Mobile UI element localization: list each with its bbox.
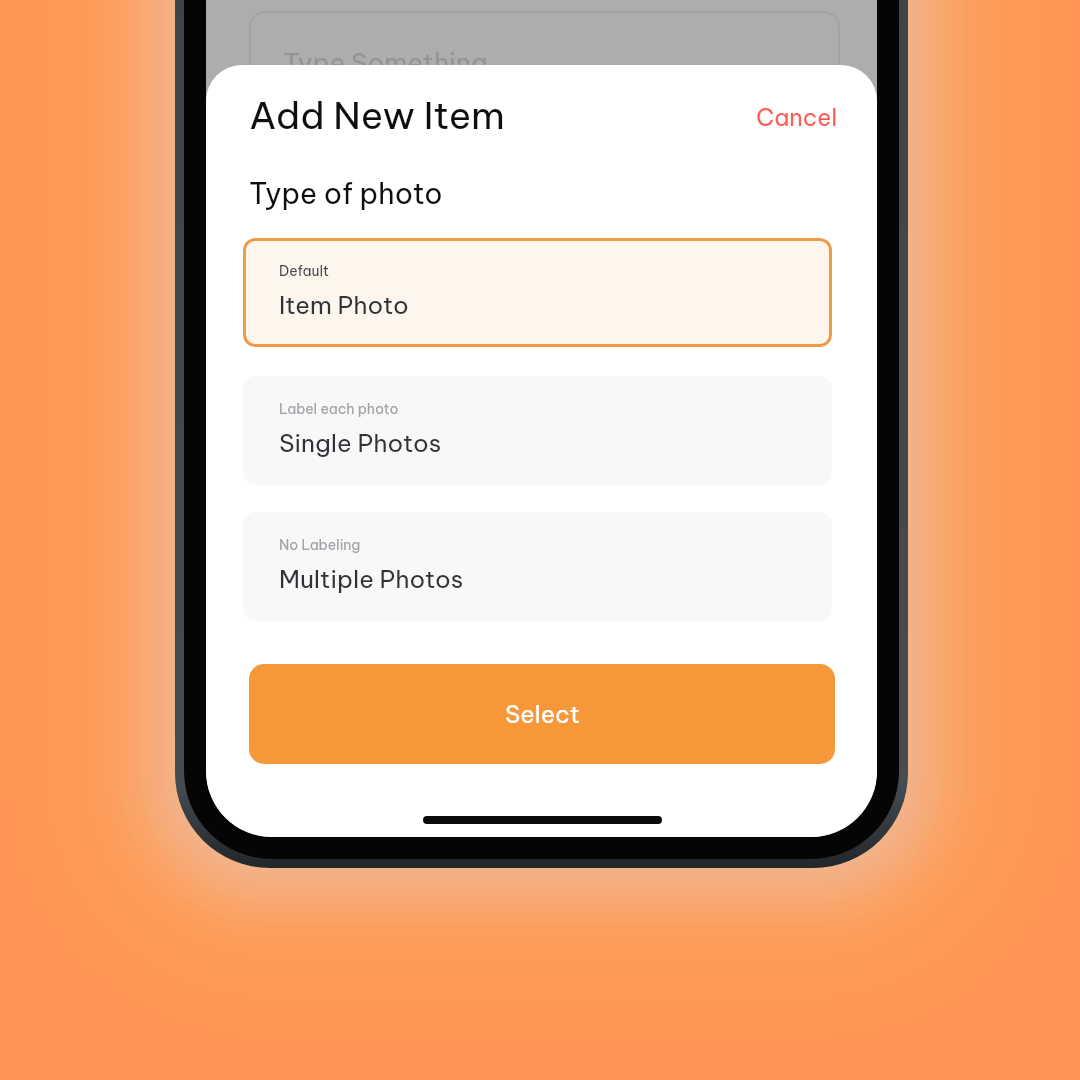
staticText: Multiple Photos <box>279 563 464 594</box>
staticText: Add New Item <box>249 91 505 138</box>
staticText: Cancel <box>756 102 838 132</box>
button[interactable]: Label each photo <box>243 376 832 485</box>
staticText: Default <box>279 262 330 280</box>
button[interactable]: Select <box>249 664 835 764</box>
button[interactable]: Default <box>243 238 832 347</box>
staticText: Label each photo <box>279 400 399 418</box>
staticText: Type Something <box>283 46 488 79</box>
staticText: Item Photo <box>279 289 409 320</box>
staticText: Single Photos <box>279 427 442 458</box>
staticText: No Labeling <box>279 536 361 554</box>
staticText: Select <box>505 699 580 729</box>
button[interactable]: No Labeling <box>243 512 832 621</box>
button[interactable]: Cancel <box>744 94 850 140</box>
staticText: Type of photo <box>249 175 443 211</box>
